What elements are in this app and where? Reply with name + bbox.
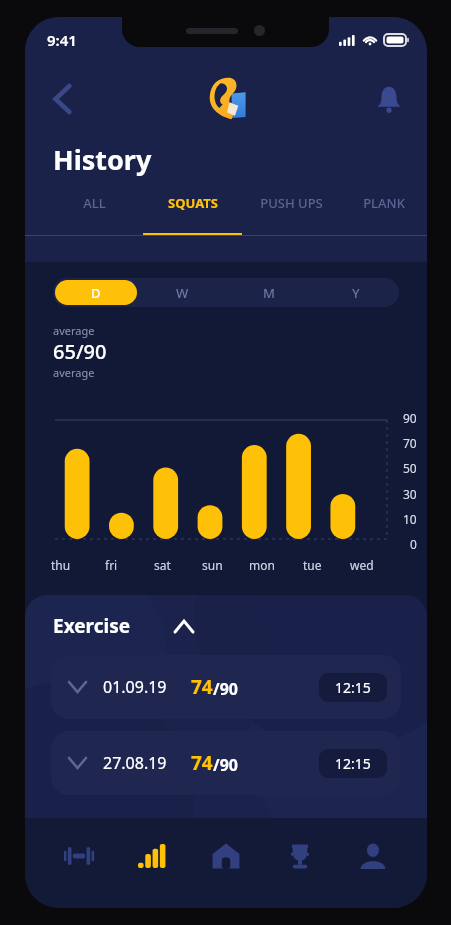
staticText: Exercise xyxy=(53,613,131,639)
staticText: 90 xyxy=(403,410,417,426)
button[interactable]: Notifications xyxy=(365,75,413,123)
button[interactable]: D xyxy=(55,280,137,305)
button[interactable]: ALL xyxy=(45,190,143,236)
staticText: M xyxy=(263,284,275,302)
button[interactable]: SQUATS xyxy=(143,190,242,236)
button[interactable]: M xyxy=(227,280,310,305)
staticText: 12:15 xyxy=(335,678,371,697)
staticText: 10 xyxy=(403,511,417,527)
button[interactable]: Back xyxy=(39,75,87,123)
button[interactable]: Home xyxy=(198,832,254,880)
staticText: W xyxy=(176,284,189,302)
staticText: PUSH UPS xyxy=(260,194,323,212)
staticText: sat xyxy=(154,557,171,573)
staticText: D xyxy=(91,284,101,302)
staticText: tue xyxy=(303,557,322,573)
staticText: 12:15 xyxy=(335,754,371,773)
button[interactable]: Workouts xyxy=(51,832,107,880)
staticText: 27.08.19 xyxy=(103,752,167,774)
staticText: SQUATS xyxy=(168,194,218,212)
staticText: 74 xyxy=(191,750,213,776)
staticText: 30 xyxy=(403,486,417,502)
staticText: 74 xyxy=(191,674,213,700)
staticText: /90 xyxy=(213,678,238,700)
staticText: ALL xyxy=(83,194,106,212)
staticText: /90 xyxy=(213,754,238,776)
button[interactable]: PLANK xyxy=(341,190,427,236)
staticText: 65/90 xyxy=(53,338,107,365)
staticText: average xyxy=(53,323,95,338)
button[interactable]: Exercise xyxy=(53,613,427,639)
staticText: fri xyxy=(105,557,118,573)
staticText: History xyxy=(53,141,152,178)
button[interactable]: 01.09.19 xyxy=(51,655,401,719)
button[interactable]: Achievements xyxy=(272,832,328,880)
staticText: 9:41 xyxy=(47,30,77,50)
staticText: 50 xyxy=(403,460,417,476)
button[interactable]: W xyxy=(141,280,223,305)
button[interactable]: Statistics xyxy=(124,832,180,880)
button[interactable]: Profile xyxy=(345,832,401,880)
button[interactable]: PUSH UPS xyxy=(242,190,341,236)
staticText: 0 xyxy=(410,536,417,552)
staticText: mon xyxy=(249,557,275,573)
staticText: PLANK xyxy=(363,194,405,212)
staticText: average xyxy=(53,365,95,380)
staticText: 01.09.19 xyxy=(103,676,167,698)
staticText: wed xyxy=(350,557,374,573)
staticText: thu xyxy=(51,557,71,573)
staticText: sun xyxy=(202,557,223,573)
staticText: 70 xyxy=(403,435,417,451)
staticText: Y xyxy=(352,284,360,302)
button[interactable]: 27.08.19 xyxy=(51,731,401,795)
button[interactable]: Y xyxy=(314,280,397,305)
